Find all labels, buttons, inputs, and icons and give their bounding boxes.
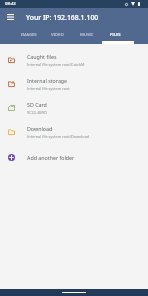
staticText: Add another folder <box>27 154 75 161</box>
staticText: Internal storage <box>27 77 68 84</box>
staticText: Internal file system root <box>27 86 70 91</box>
staticText: IMAGES <box>21 32 37 38</box>
staticText: VIDEO <box>51 32 64 38</box>
button[interactable]: Internal storage <box>0 73 148 97</box>
button[interactable]: Download <box>0 121 148 145</box>
staticText: SD Card <box>27 101 47 108</box>
staticText: 08:43 <box>5 1 16 7</box>
button[interactable]: Open navigation drawer <box>0 8 20 26</box>
staticText: Internal file system root/CatchM <box>27 62 85 67</box>
button[interactable]: VIDEO <box>43 26 72 44</box>
staticText: MUSIC <box>80 32 94 38</box>
button[interactable]: MUSIC <box>72 26 101 44</box>
staticText: Caught files <box>27 53 57 60</box>
staticText: Download <box>27 125 53 132</box>
button[interactable]: FILES <box>101 26 130 44</box>
staticText: Your IP: 192.168.1.100 <box>26 13 99 22</box>
button[interactable]: Add another folder <box>0 145 148 169</box>
staticText: 9C22-4B9D <box>27 110 47 115</box>
button[interactable]: SD Card <box>0 97 148 121</box>
staticText: Internal file system root/Download <box>27 134 90 139</box>
button[interactable]: Caught files <box>0 49 148 73</box>
button[interactable]: IMAGES <box>14 26 43 44</box>
staticText: FILES <box>110 32 121 38</box>
